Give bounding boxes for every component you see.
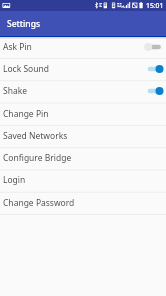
staticText: Settings [7,18,41,30]
button[interactable]: Lock Sound [0,58,166,80]
staticText: Saved Networks [3,130,68,142]
button[interactable]: Configure Bridge [0,147,166,169]
button[interactable]: Saved Networks [0,125,166,147]
staticText: Change Pin [3,108,49,120]
button[interactable]: Ask Pin [0,36,166,58]
staticText: Configure Bridge [3,152,72,164]
button[interactable]: Login [0,169,166,191]
button[interactable]: Change Pin [0,103,166,125]
staticText: Change Password [3,197,75,209]
staticText: Lock Sound [3,63,49,75]
staticText: Shake [3,85,28,97]
staticText: 15:01 [146,1,164,10]
staticText: Login [3,174,26,186]
button[interactable]: Shake [0,80,166,102]
button[interactable]: Toggle on [142,83,166,99]
button[interactable]: Toggle off [142,39,166,55]
button[interactable]: Change Password [0,192,166,214]
staticText: Ask Pin [3,41,32,53]
button[interactable]: Toggle on [142,61,166,77]
